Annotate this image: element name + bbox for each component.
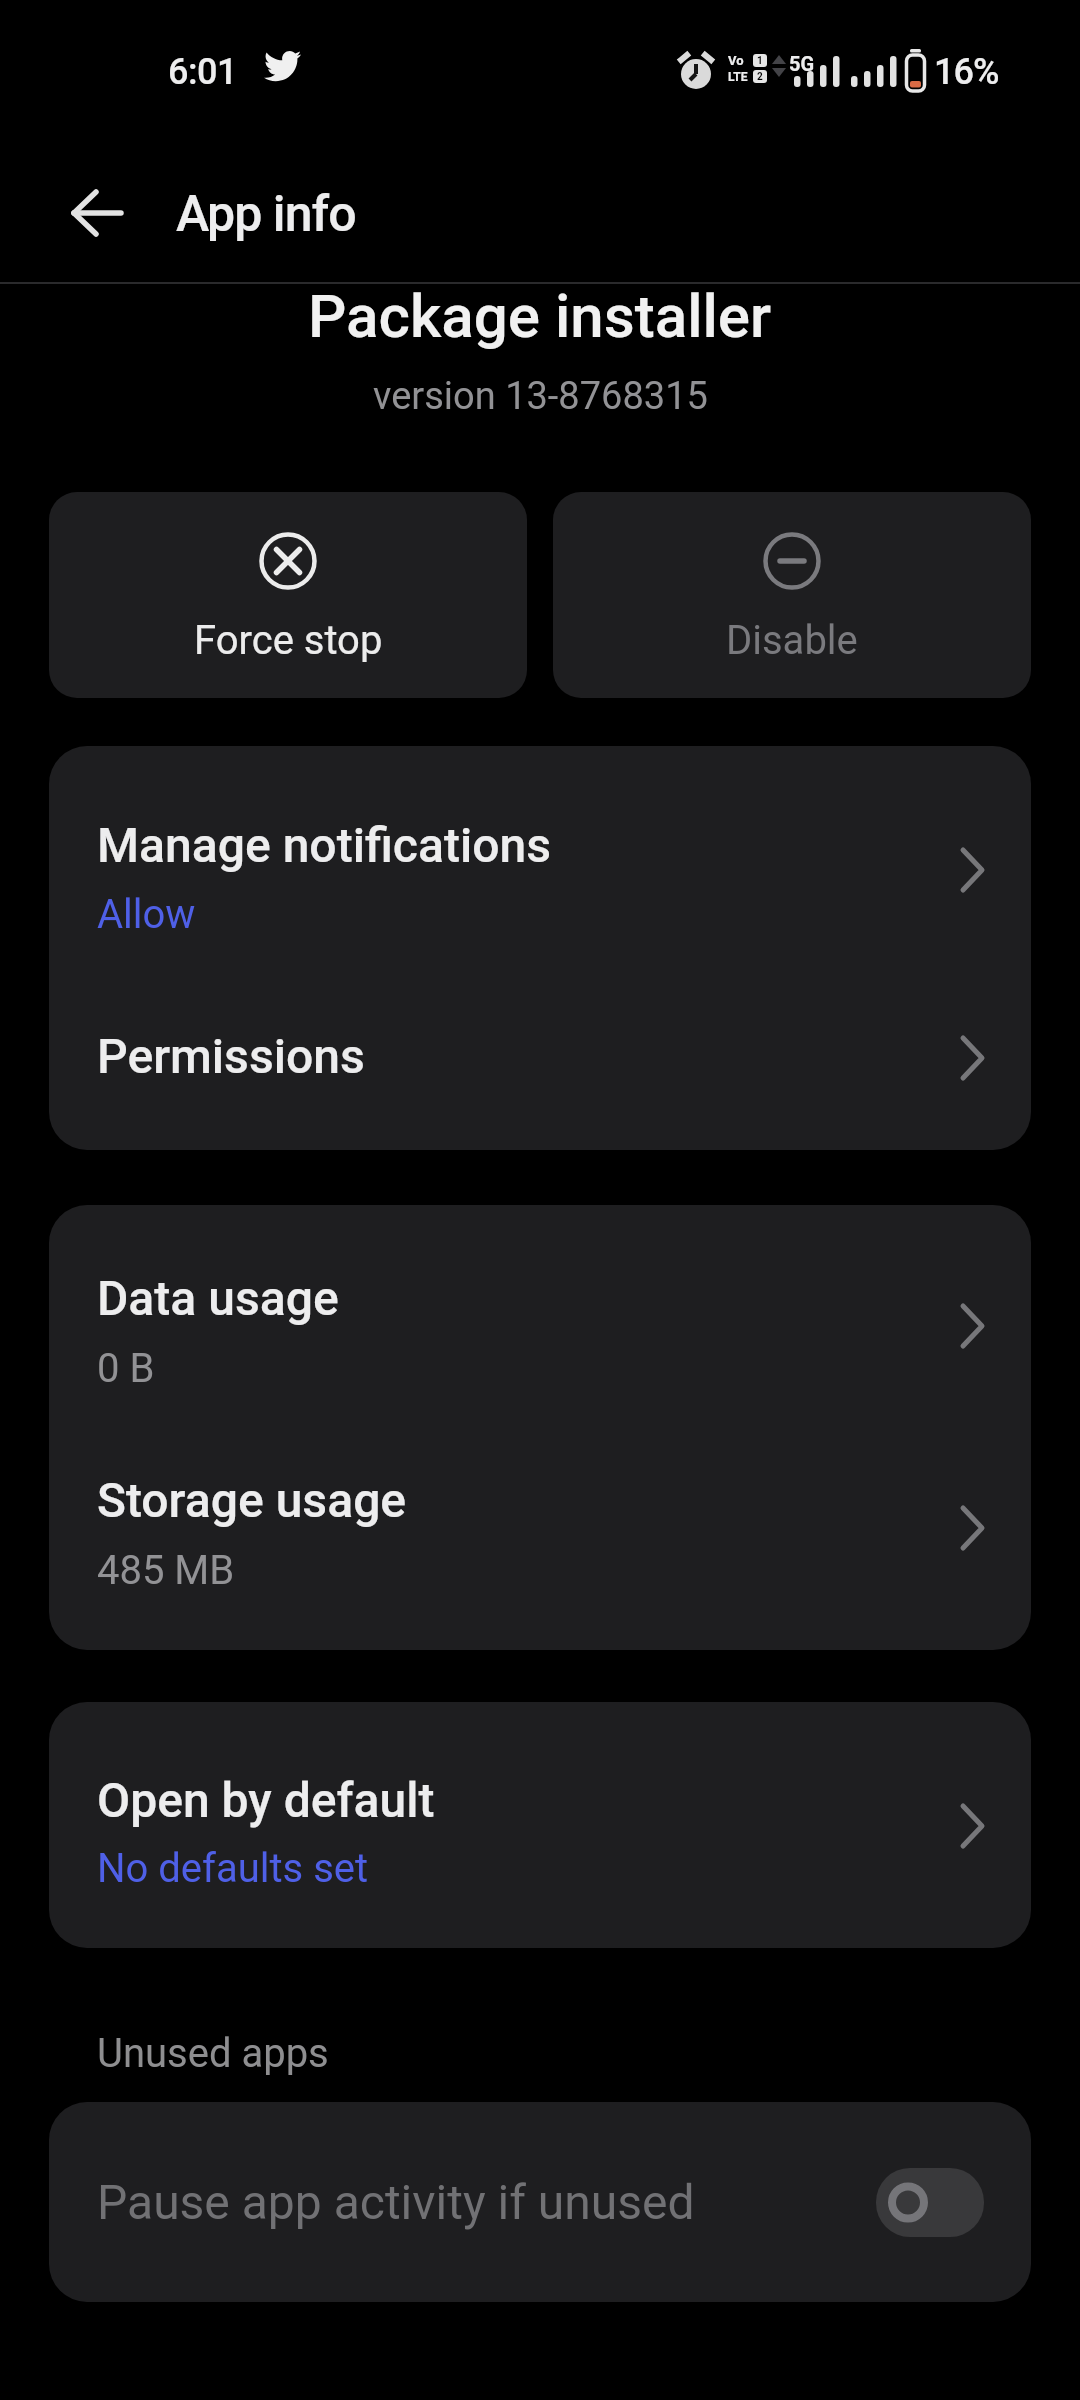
staticText: LTE	[728, 70, 748, 84]
button[interactable]: Open by default	[49, 1702, 1031, 1948]
staticText: 5G	[789, 52, 815, 75]
staticText: Data usage	[97, 1270, 339, 1326]
button[interactable]: Disable	[553, 492, 1031, 698]
staticText: Manage notifications	[97, 817, 552, 873]
button[interactable]: Data usage	[49, 1205, 1031, 1435]
button[interactable]: Manage notifications	[49, 746, 1031, 974]
staticText: 485 MB	[97, 1547, 235, 1594]
staticText: Allow	[97, 891, 196, 938]
button[interactable]: Permissions	[49, 974, 1031, 1150]
button[interactable]: Storage usage	[49, 1435, 1031, 1650]
staticText: 0 B	[97, 1345, 155, 1392]
staticText: Force stop	[194, 617, 383, 664]
staticText: Storage usage	[97, 1472, 407, 1528]
staticText: Pause app activity if unused	[97, 2174, 695, 2230]
button[interactable]	[72, 190, 124, 236]
button[interactable]	[876, 2168, 984, 2237]
staticText: version 13-8768315	[373, 374, 708, 419]
staticText: 16%	[934, 51, 999, 93]
staticText: Permissions	[97, 1028, 365, 1084]
staticText: 1	[757, 55, 763, 67]
staticText: Package installer	[308, 281, 772, 351]
staticText: App info	[176, 185, 356, 244]
staticText: No defaults set	[97, 1845, 369, 1892]
staticText: Open by default	[97, 1772, 435, 1828]
button[interactable]: Force stop	[49, 492, 527, 698]
staticText: 6:01	[168, 51, 237, 93]
staticText: Disable	[726, 617, 858, 664]
button[interactable]: Pause app activity if unused	[49, 2102, 1031, 2302]
staticText: Unused apps	[97, 2030, 329, 2077]
staticText: Vo	[728, 53, 744, 68]
staticText: 2	[757, 71, 763, 83]
